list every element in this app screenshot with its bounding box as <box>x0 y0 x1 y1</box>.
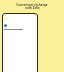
staticText: with Zelle <box>25 6 40 10</box>
staticText: Convenient recharge <box>16 3 48 7</box>
